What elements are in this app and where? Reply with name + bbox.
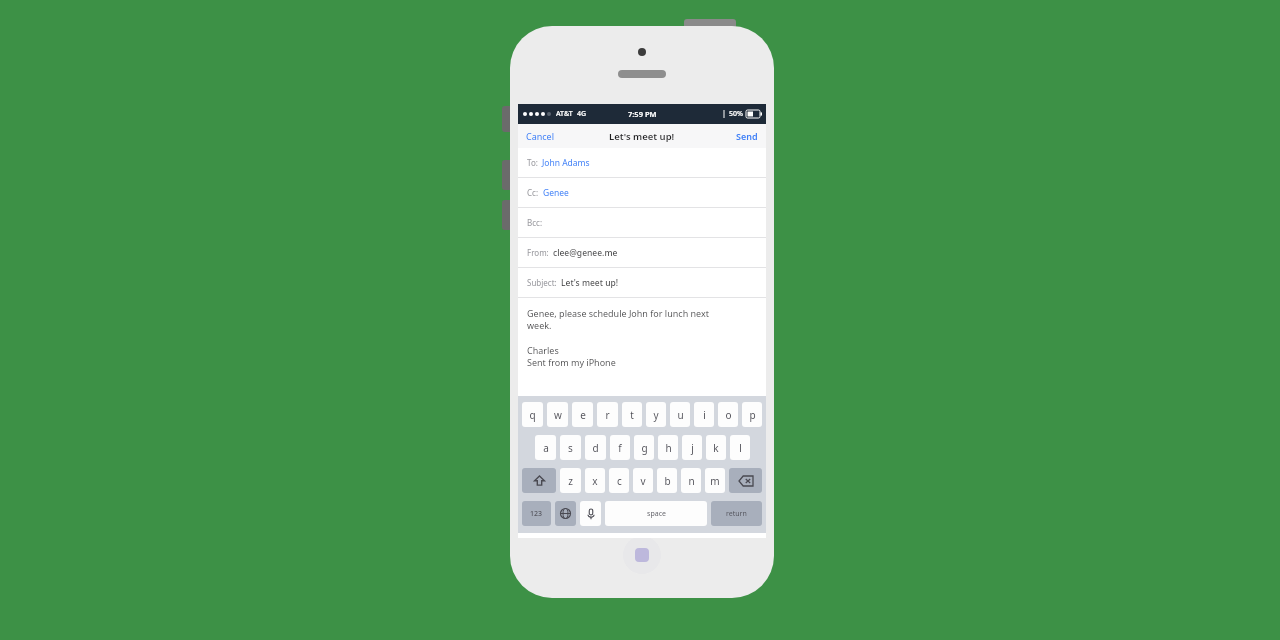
button[interactable]: r [597,402,618,427]
staticText: x [592,474,598,488]
staticText: r [605,408,610,422]
staticText: Send [736,130,758,142]
button[interactable]: Bcc: [518,208,766,238]
staticText: g [641,441,648,455]
button[interactable]: Mute [502,106,511,132]
staticText: o [725,408,732,422]
button[interactable]: f [610,435,630,460]
staticText: e [580,408,586,422]
staticText: Genee [543,187,569,199]
staticText: w [554,408,562,422]
staticText: From: [527,247,549,258]
staticText: 7:59 PM [628,109,657,119]
staticText: c [617,474,622,488]
button[interactable]: Home [623,536,661,574]
staticText: 4G [577,109,587,119]
button[interactable]: l [730,435,750,460]
button[interactable]: Subject: [518,268,766,298]
button[interactable]: Dictate [580,501,601,526]
button[interactable]: h [658,435,678,460]
button[interactable]: q [522,402,543,427]
staticText: v [640,474,646,488]
button[interactable]: o [718,402,738,427]
button[interactable]: s [560,435,581,460]
button[interactable]: n [681,468,701,493]
staticText: h [665,441,672,455]
button[interactable]: p [742,402,762,427]
button[interactable]: m [705,468,725,493]
staticText: p [749,408,756,422]
button[interactable]: Power [684,19,736,29]
button[interactable]: Cc: [518,178,766,208]
button[interactable]: t [622,402,642,427]
staticText: d [592,441,599,455]
staticText: l [739,441,742,455]
staticText: Sent from my iPhone [527,356,616,368]
staticText: u [677,408,684,422]
button[interactable]: g [634,435,654,460]
button[interactable]: Return [711,501,762,526]
staticText: clee@genee.me [553,247,618,259]
button[interactable]: x [585,468,605,493]
staticText: i [703,408,706,422]
staticText: 123 [530,509,543,519]
staticText: s [568,441,573,455]
staticText: AT&T [556,109,573,119]
button[interactable]: b [657,468,677,493]
staticText: Subject: [527,277,557,288]
button[interactable]: Send [728,126,766,146]
button[interactable]: Shift [522,468,556,493]
button[interactable]: u [670,402,690,427]
button[interactable]: Emoji [555,501,576,526]
staticText: m [710,474,720,488]
button[interactable]: d [585,435,606,460]
staticText: q [529,408,536,422]
button[interactable]: z [560,468,581,493]
button[interactable]: From: [518,238,766,268]
staticText: Bcc: [527,217,543,228]
button[interactable]: i [694,402,714,427]
staticText: space [647,509,666,519]
staticText: j [691,441,694,455]
staticText: Cancel [526,130,555,142]
button[interactable]: a [535,435,556,460]
staticText: t [630,408,634,422]
staticText: Let's meet up! [561,277,619,289]
staticText: Let's meet up! [609,130,675,143]
staticText: n [688,474,695,488]
button[interactable]: Volume up [502,160,511,190]
button[interactable]: e [572,402,593,427]
staticText: Genee, please schedule John for lunch ne… [527,307,710,332]
staticText: k [713,441,719,455]
button[interactable]: k [706,435,726,460]
button[interactable]: To: [518,148,766,178]
staticText: return [726,509,747,519]
staticText: Charles [527,344,559,356]
staticText: y [653,408,659,422]
button[interactable]: c [609,468,629,493]
button[interactable]: y [646,402,666,427]
button[interactable]: v [633,468,653,493]
button[interactable]: Backspace [729,468,762,493]
button[interactable]: Volume down [502,200,511,230]
button[interactable]: j [682,435,702,460]
staticText: John Adams [542,157,590,169]
staticText: To: [527,157,538,168]
button[interactable]: w [547,402,568,427]
staticText: a [543,441,549,455]
button[interactable]: space [605,501,707,526]
button[interactable]: Numbers [522,501,551,526]
staticText: z [568,474,573,488]
button[interactable]: Cancel [518,126,563,146]
staticText: Cc: [527,187,539,198]
staticText: 50% [729,109,743,119]
staticText: f [618,441,622,455]
staticText: b [664,474,671,488]
